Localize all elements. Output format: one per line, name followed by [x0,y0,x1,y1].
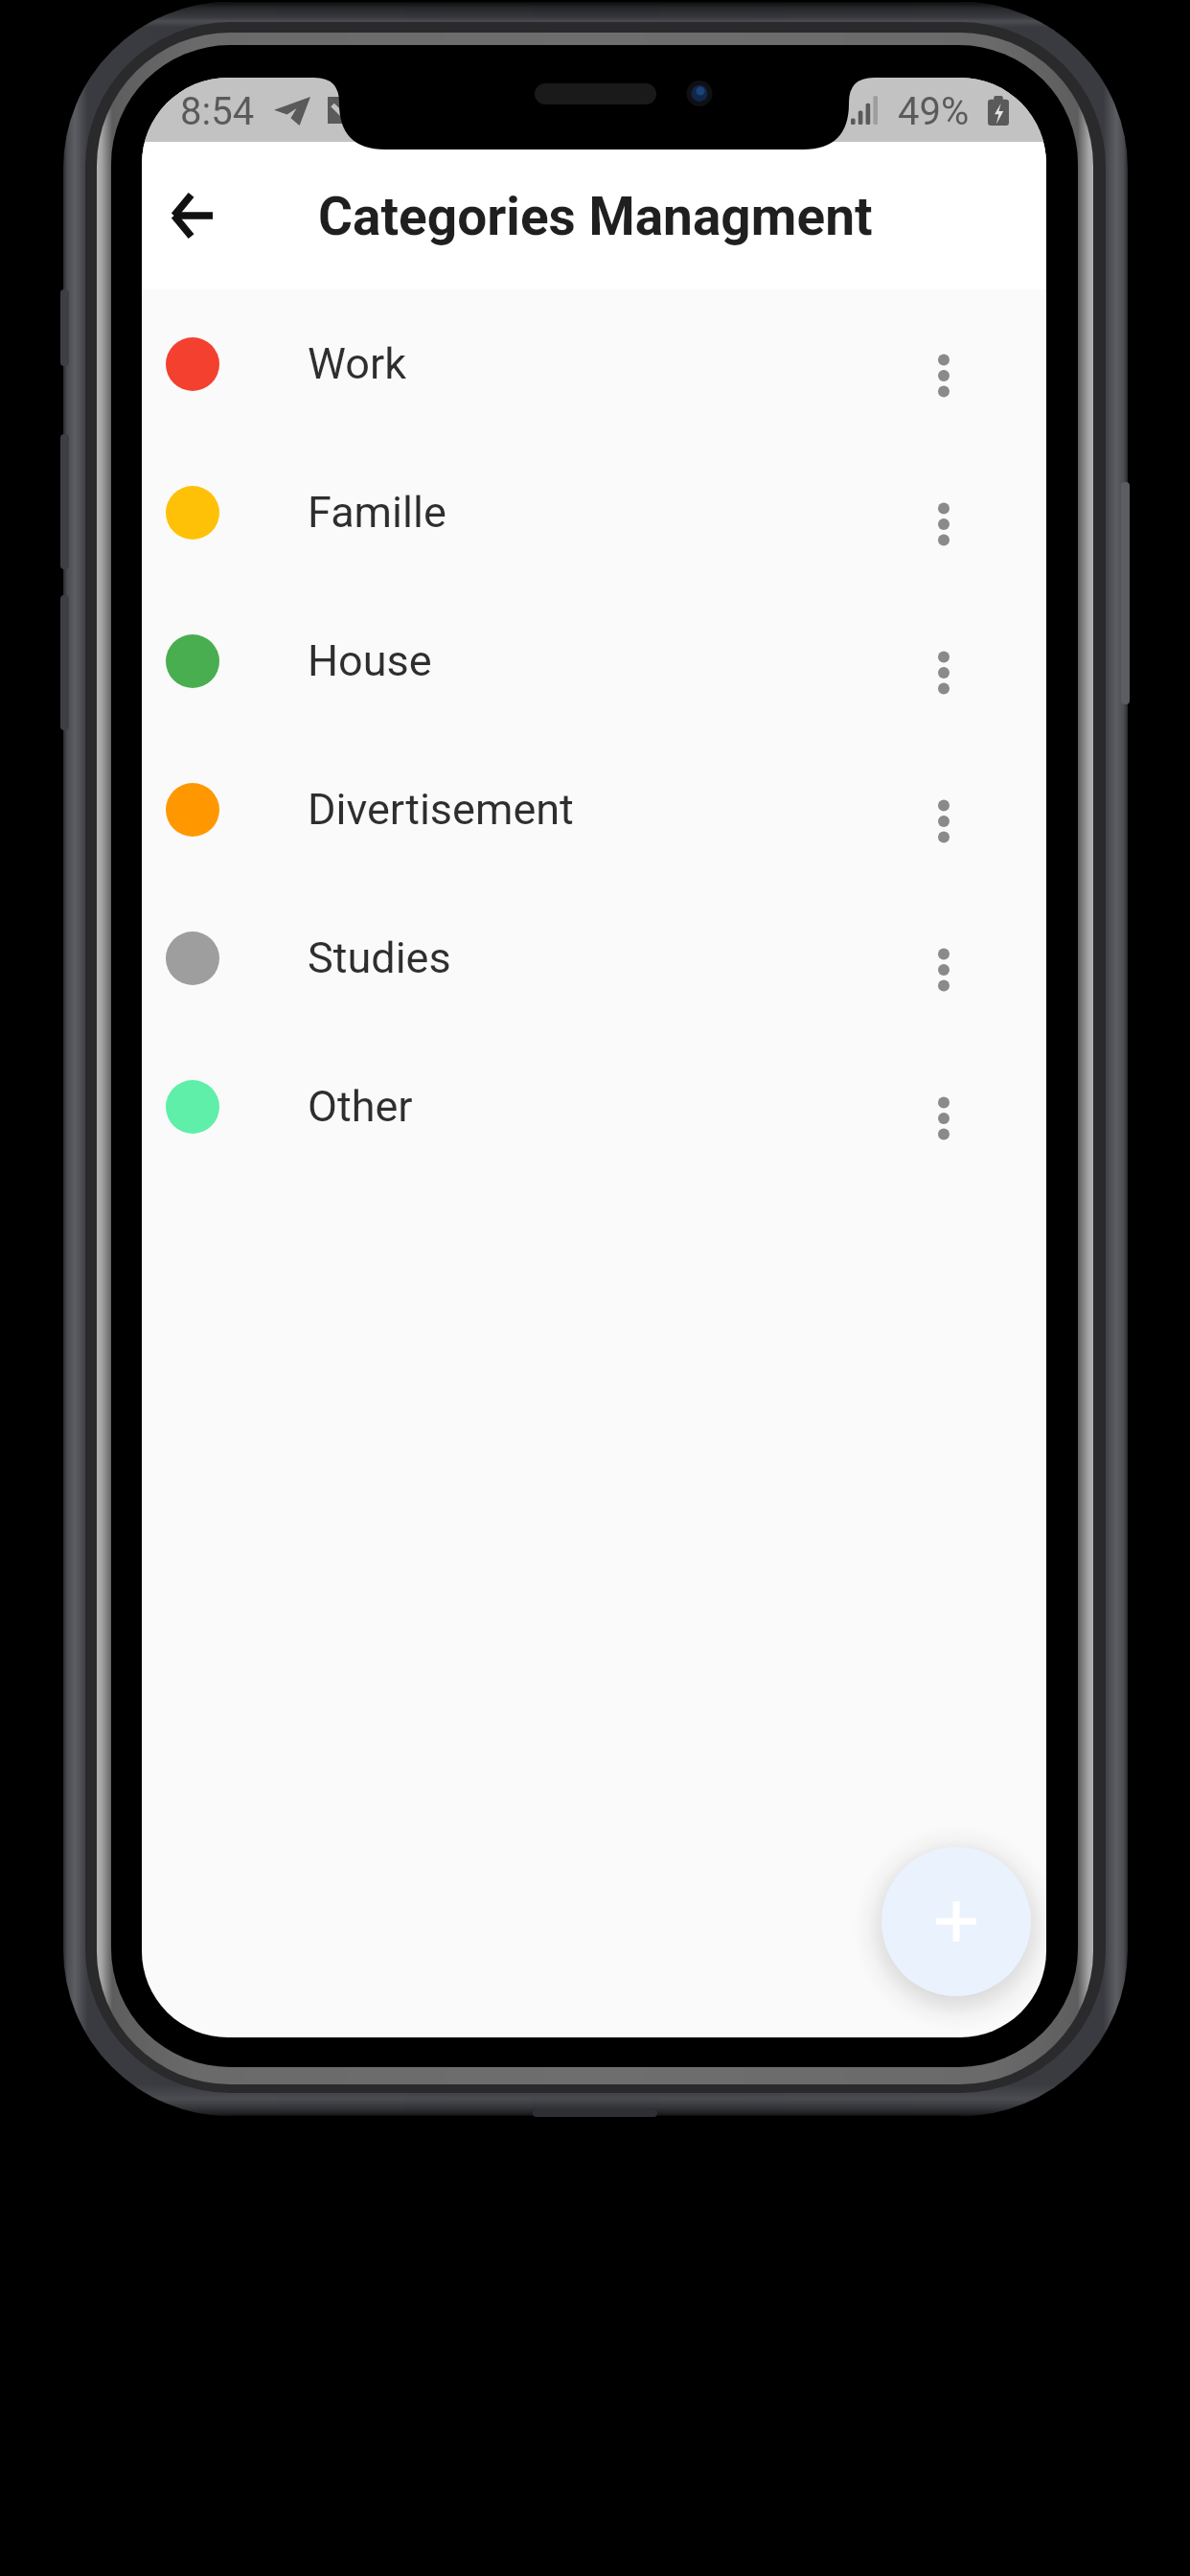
staticText: Categories Managment [318,186,873,247]
staticText: Famille [308,487,446,538]
button[interactable]: More options [901,1075,987,1161]
staticText: House [308,635,432,686]
staticText: Work [308,338,406,389]
staticText: 49% [898,89,970,134]
button[interactable]: House [142,586,1046,735]
staticText: Other [308,1081,413,1132]
staticText: 8:54 [180,89,255,134]
button[interactable]: Back [142,162,245,269]
button[interactable]: Studies [142,884,1046,1032]
button[interactable]: More options [901,481,987,567]
staticText: Divertisement [308,784,574,835]
button[interactable]: Work [142,289,1046,438]
button[interactable]: Famille [142,438,1046,586]
button[interactable]: Other [142,1032,1046,1181]
staticText: Studies [308,932,451,983]
button[interactable]: More options [901,630,987,716]
button[interactable]: More options [901,927,987,1013]
button[interactable]: More options [901,778,987,864]
button[interactable]: More options [901,333,987,419]
button[interactable]: Add category [881,1847,1031,1996]
button[interactable]: Divertisement [142,735,1046,884]
